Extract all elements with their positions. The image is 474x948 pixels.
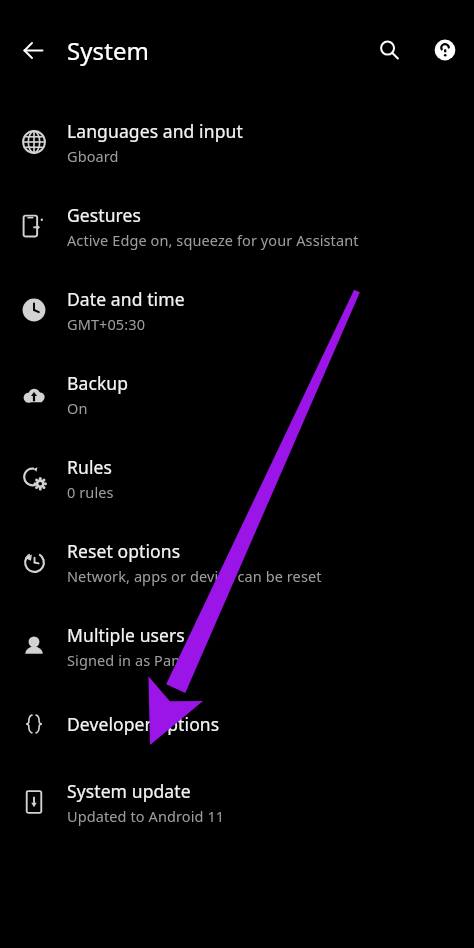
staticText: Date and time (67, 287, 185, 311)
button[interactable]: Multiple users (0, 604, 474, 688)
button[interactable]: Help (416, 0, 474, 100)
staticText: GMT+05:30 (67, 314, 146, 334)
staticText: Backup (67, 371, 129, 395)
button[interactable]: Rules (0, 436, 474, 520)
staticText: Gestures (67, 203, 142, 227)
staticText: Active Edge on, squeeze for your Assista… (67, 230, 359, 250)
staticText: System update (67, 779, 191, 803)
staticText: Network, apps or device can be reset (67, 566, 322, 586)
button[interactable]: Backup (0, 352, 474, 436)
staticText: Updated to Android 11 (67, 806, 225, 826)
staticText: Rules (67, 455, 112, 479)
staticText: Gboard (67, 146, 119, 166)
button[interactable]: System update (0, 760, 474, 844)
button[interactable]: Back (0, 0, 67, 100)
button[interactable]: Search (362, 0, 416, 100)
staticText: Multiple users (67, 623, 185, 647)
staticText: 0 rules (67, 482, 114, 502)
staticText: Signed in as Pankil (67, 650, 196, 670)
button[interactable]: Developer options (0, 688, 474, 760)
staticText: On (67, 398, 88, 418)
button[interactable]: Gestures (0, 184, 474, 268)
button[interactable]: Languages and input (0, 100, 474, 184)
button[interactable]: Reset options (0, 520, 474, 604)
button[interactable]: Date and time (0, 268, 474, 352)
staticText: Languages and input (67, 119, 243, 143)
staticText: Developer options (67, 712, 220, 736)
staticText: System (67, 34, 150, 67)
staticText: Reset options (67, 539, 181, 563)
